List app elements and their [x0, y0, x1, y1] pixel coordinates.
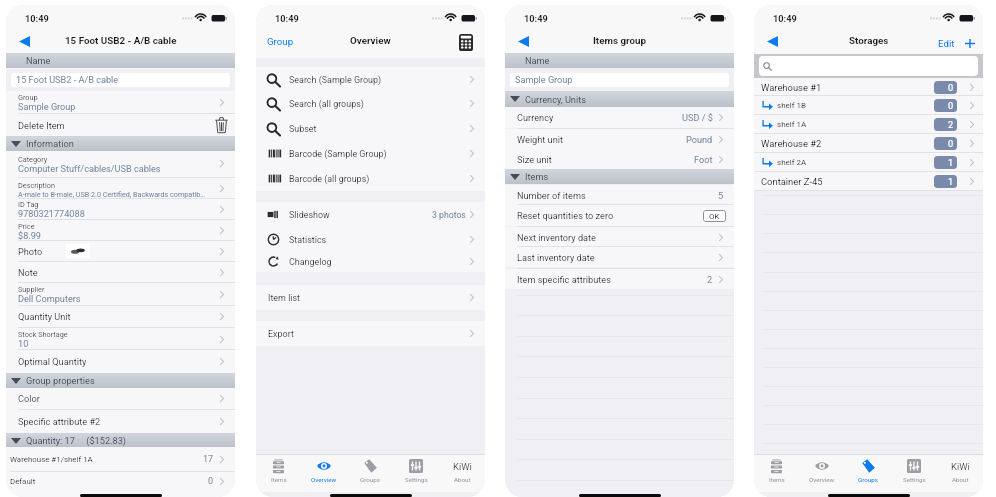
button[interactable]: Warehouse #1/shelf 1A: [6, 447, 235, 471]
button[interactable]: OK: [703, 210, 726, 222]
button[interactable]: Changelog: [256, 251, 485, 272]
staticText: 10:49: [25, 13, 49, 24]
button[interactable]: Calculator: [456, 32, 476, 52]
staticText: 10: [18, 339, 206, 350]
staticText: Price: [18, 222, 35, 231]
staticText: 0: [948, 82, 954, 93]
button[interactable]: KiWi: [439, 455, 485, 493]
staticText: KiWi: [453, 461, 472, 472]
button[interactable]: Items: [754, 455, 799, 493]
staticText: 17: [203, 454, 214, 465]
button[interactable]: Groups: [347, 455, 393, 493]
staticText: Currency: [517, 112, 554, 123]
staticText: Items: [271, 476, 287, 483]
button[interactable]: Color: [6, 388, 235, 409]
button[interactable]: Size unit: [505, 150, 734, 169]
button[interactable]: Settings: [393, 455, 439, 493]
staticText: Warehouse #1/shelf 1A: [10, 455, 93, 464]
button[interactable]: Barcode (all groups): [256, 166, 485, 191]
button[interactable]: Add: [962, 36, 977, 51]
button[interactable]: Number of items: [505, 185, 734, 205]
button[interactable]: shelf 2A: [754, 153, 983, 171]
button[interactable]: Back: [762, 32, 782, 51]
button[interactable]: Delete Item: [6, 114, 235, 136]
button[interactable]: Back: [513, 32, 533, 51]
staticText: Barcode (Sample Group): [289, 149, 387, 159]
button[interactable]: Note: [6, 262, 235, 283]
staticText: Size unit: [517, 154, 552, 165]
button[interactable]: Search (Sample Group): [256, 67, 485, 92]
button[interactable]: Settings: [891, 455, 937, 493]
staticText: Next inventory date: [517, 232, 596, 243]
other: Delete: [215, 117, 228, 133]
staticText: Slideshow: [289, 210, 330, 220]
button[interactable]: Barcode (Sample Group): [256, 141, 485, 166]
staticText: Items: [525, 171, 549, 182]
staticText: Color: [18, 393, 40, 404]
button[interactable]: Export: [256, 321, 485, 346]
staticText: Settings: [903, 476, 926, 483]
staticText: 10:49: [773, 13, 797, 24]
staticText: Overview: [311, 476, 337, 483]
button[interactable]: Item specific attributes: [505, 269, 734, 289]
button[interactable]: Supplier: [6, 283, 235, 305]
button[interactable]: Last inventory date: [505, 247, 734, 267]
button[interactable]: [759, 56, 978, 76]
button[interactable]: Item list: [256, 285, 485, 310]
button[interactable]: Statistics: [256, 227, 485, 252]
staticText: Group properties: [26, 375, 95, 386]
button[interactable]: KiWi: [937, 455, 983, 493]
button[interactable]: Weight unit: [505, 129, 734, 150]
staticText: Warehouse #2: [761, 138, 822, 149]
button[interactable]: Description: [6, 178, 235, 198]
button[interactable]: Items: [256, 455, 301, 493]
staticText: Groups: [360, 476, 380, 483]
staticText: Statistics: [289, 235, 327, 245]
staticText: Items group: [593, 35, 646, 46]
staticText: Export: [268, 329, 294, 339]
button[interactable]: Next inventory date: [505, 227, 734, 247]
staticText: 3 photos: [432, 210, 466, 220]
staticText: 2: [948, 119, 954, 130]
staticText: Groups: [858, 476, 878, 483]
button[interactable]: 15 Foot USB2 - A/B cable: [11, 73, 230, 87]
button[interactable]: Slideshow: [256, 202, 485, 227]
button[interactable]: Overview: [301, 455, 347, 493]
button[interactable]: Quantity Unit: [6, 306, 235, 327]
button[interactable]: Default: [6, 472, 235, 491]
button[interactable]: Price: [6, 220, 235, 241]
button[interactable]: Sample Group: [510, 73, 729, 87]
staticText: 1: [948, 157, 954, 168]
button[interactable]: shelf 1B: [754, 96, 983, 114]
button[interactable]: Photo: [6, 241, 235, 261]
staticText: Dell Computers: [18, 294, 206, 305]
button[interactable]: Group: [267, 36, 294, 47]
staticText: Settings: [405, 476, 428, 483]
button[interactable]: Group: [6, 91, 235, 113]
button[interactable]: Warehouse #1: [754, 78, 983, 96]
staticText: 1: [948, 176, 954, 187]
button[interactable]: Optimal Quantity: [6, 350, 235, 373]
button[interactable]: Currency: [505, 107, 734, 128]
staticText: Barcode (all groups): [289, 174, 370, 184]
button[interactable]: Warehouse #2: [754, 134, 983, 152]
button[interactable]: Specific attribute #2: [6, 410, 235, 432]
staticText: Search (all groups): [289, 99, 364, 109]
button[interactable]: Overview: [799, 455, 845, 493]
button[interactable]: Edit: [938, 38, 955, 49]
button[interactable]: Stock Shortage: [6, 328, 235, 350]
button[interactable]: Search (all groups): [256, 91, 485, 116]
staticText: Pound: [686, 134, 713, 145]
staticText: 15 Foot USB2 - A/B cable: [65, 35, 177, 46]
button[interactable]: Category: [6, 151, 235, 176]
staticText: 5: [718, 190, 724, 201]
staticText: Foot: [694, 154, 713, 165]
button[interactable]: Subset: [256, 116, 485, 141]
button[interactable]: Container Z-45: [754, 172, 983, 190]
button[interactable]: shelf 1A: [754, 115, 983, 133]
staticText: OK: [709, 212, 720, 221]
button[interactable]: Back: [14, 32, 34, 51]
button[interactable]: Groups: [845, 455, 891, 493]
button[interactable]: ID Tag: [6, 199, 235, 219]
staticText: About: [454, 476, 471, 483]
